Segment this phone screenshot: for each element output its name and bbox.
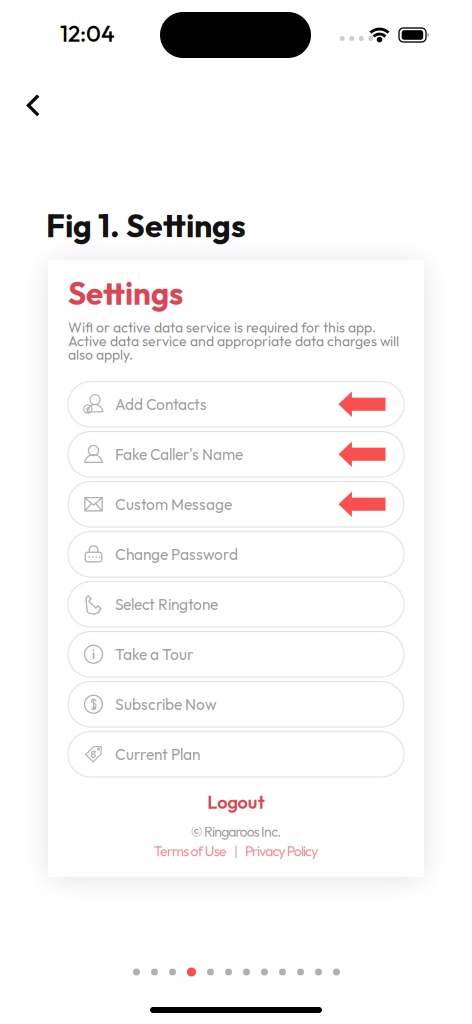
button[interactable]: Change Password — [68, 531, 404, 577]
button[interactable]: Select Ringtone — [68, 581, 404, 627]
button[interactable]: Custom Message — [68, 481, 404, 527]
staticText: Current Plan — [115, 744, 200, 764]
staticText: Fig 1. Settings — [46, 205, 246, 245]
button[interactable]: Privacy Policy — [245, 842, 318, 860]
staticText: Fake Caller's Name — [115, 444, 243, 464]
staticText: 12:04 — [60, 19, 115, 48]
staticText: Subscribe Now — [115, 694, 217, 714]
staticText: Settings — [68, 273, 183, 313]
button[interactable]: Subscribe Now — [68, 681, 404, 727]
button[interactable]: Terms of Use — [154, 842, 227, 860]
button[interactable]: Take a Tour — [68, 631, 404, 677]
staticText: Wifi or active data service is required … — [68, 318, 399, 363]
staticText: Select Ringtone — [115, 594, 218, 614]
staticText: Custom Message — [115, 494, 232, 514]
staticText: Add Contacts — [115, 394, 207, 414]
staticText: © Ringaroos Inc. — [191, 823, 281, 840]
staticText: Privacy Policy — [245, 842, 318, 860]
staticText: Terms of Use — [154, 842, 227, 860]
staticText: Logout — [207, 791, 265, 813]
staticText: Take a Tour — [115, 644, 193, 664]
button[interactable]: Back — [11, 80, 55, 131]
staticText: Change Password — [115, 544, 238, 564]
staticText: | — [234, 842, 238, 860]
button[interactable]: Add Contacts — [68, 381, 404, 427]
button[interactable]: Current Plan — [68, 731, 404, 777]
button[interactable]: Logout — [48, 791, 424, 813]
button[interactable]: Fake Caller's Name — [68, 431, 404, 477]
